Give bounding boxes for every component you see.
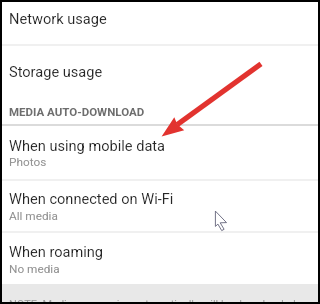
staticText: When connected on Wi-Fi [9,190,174,207]
button[interactable]: When connected on Wi-Fi, All media [0,181,320,231]
staticText: Network usage [9,10,107,27]
staticText: MEDIA AUTO-DOWNLOAD [9,105,145,118]
staticText: All media [9,209,58,223]
button[interactable]: Network usage [0,2,320,44]
staticText: When using mobile data [9,137,166,154]
staticText: Storage usage [9,63,103,80]
button[interactable]: When roaming, No media [0,233,320,284]
button[interactable]: When using mobile data, Photos [0,126,320,179]
button[interactable]: Storage usage [0,46,320,98]
staticText: NOTE: Media you receive automatically wi… [9,298,296,304]
staticText: Photos [9,155,47,169]
staticText: No media [9,262,60,276]
staticText: When roaming [9,243,104,260]
